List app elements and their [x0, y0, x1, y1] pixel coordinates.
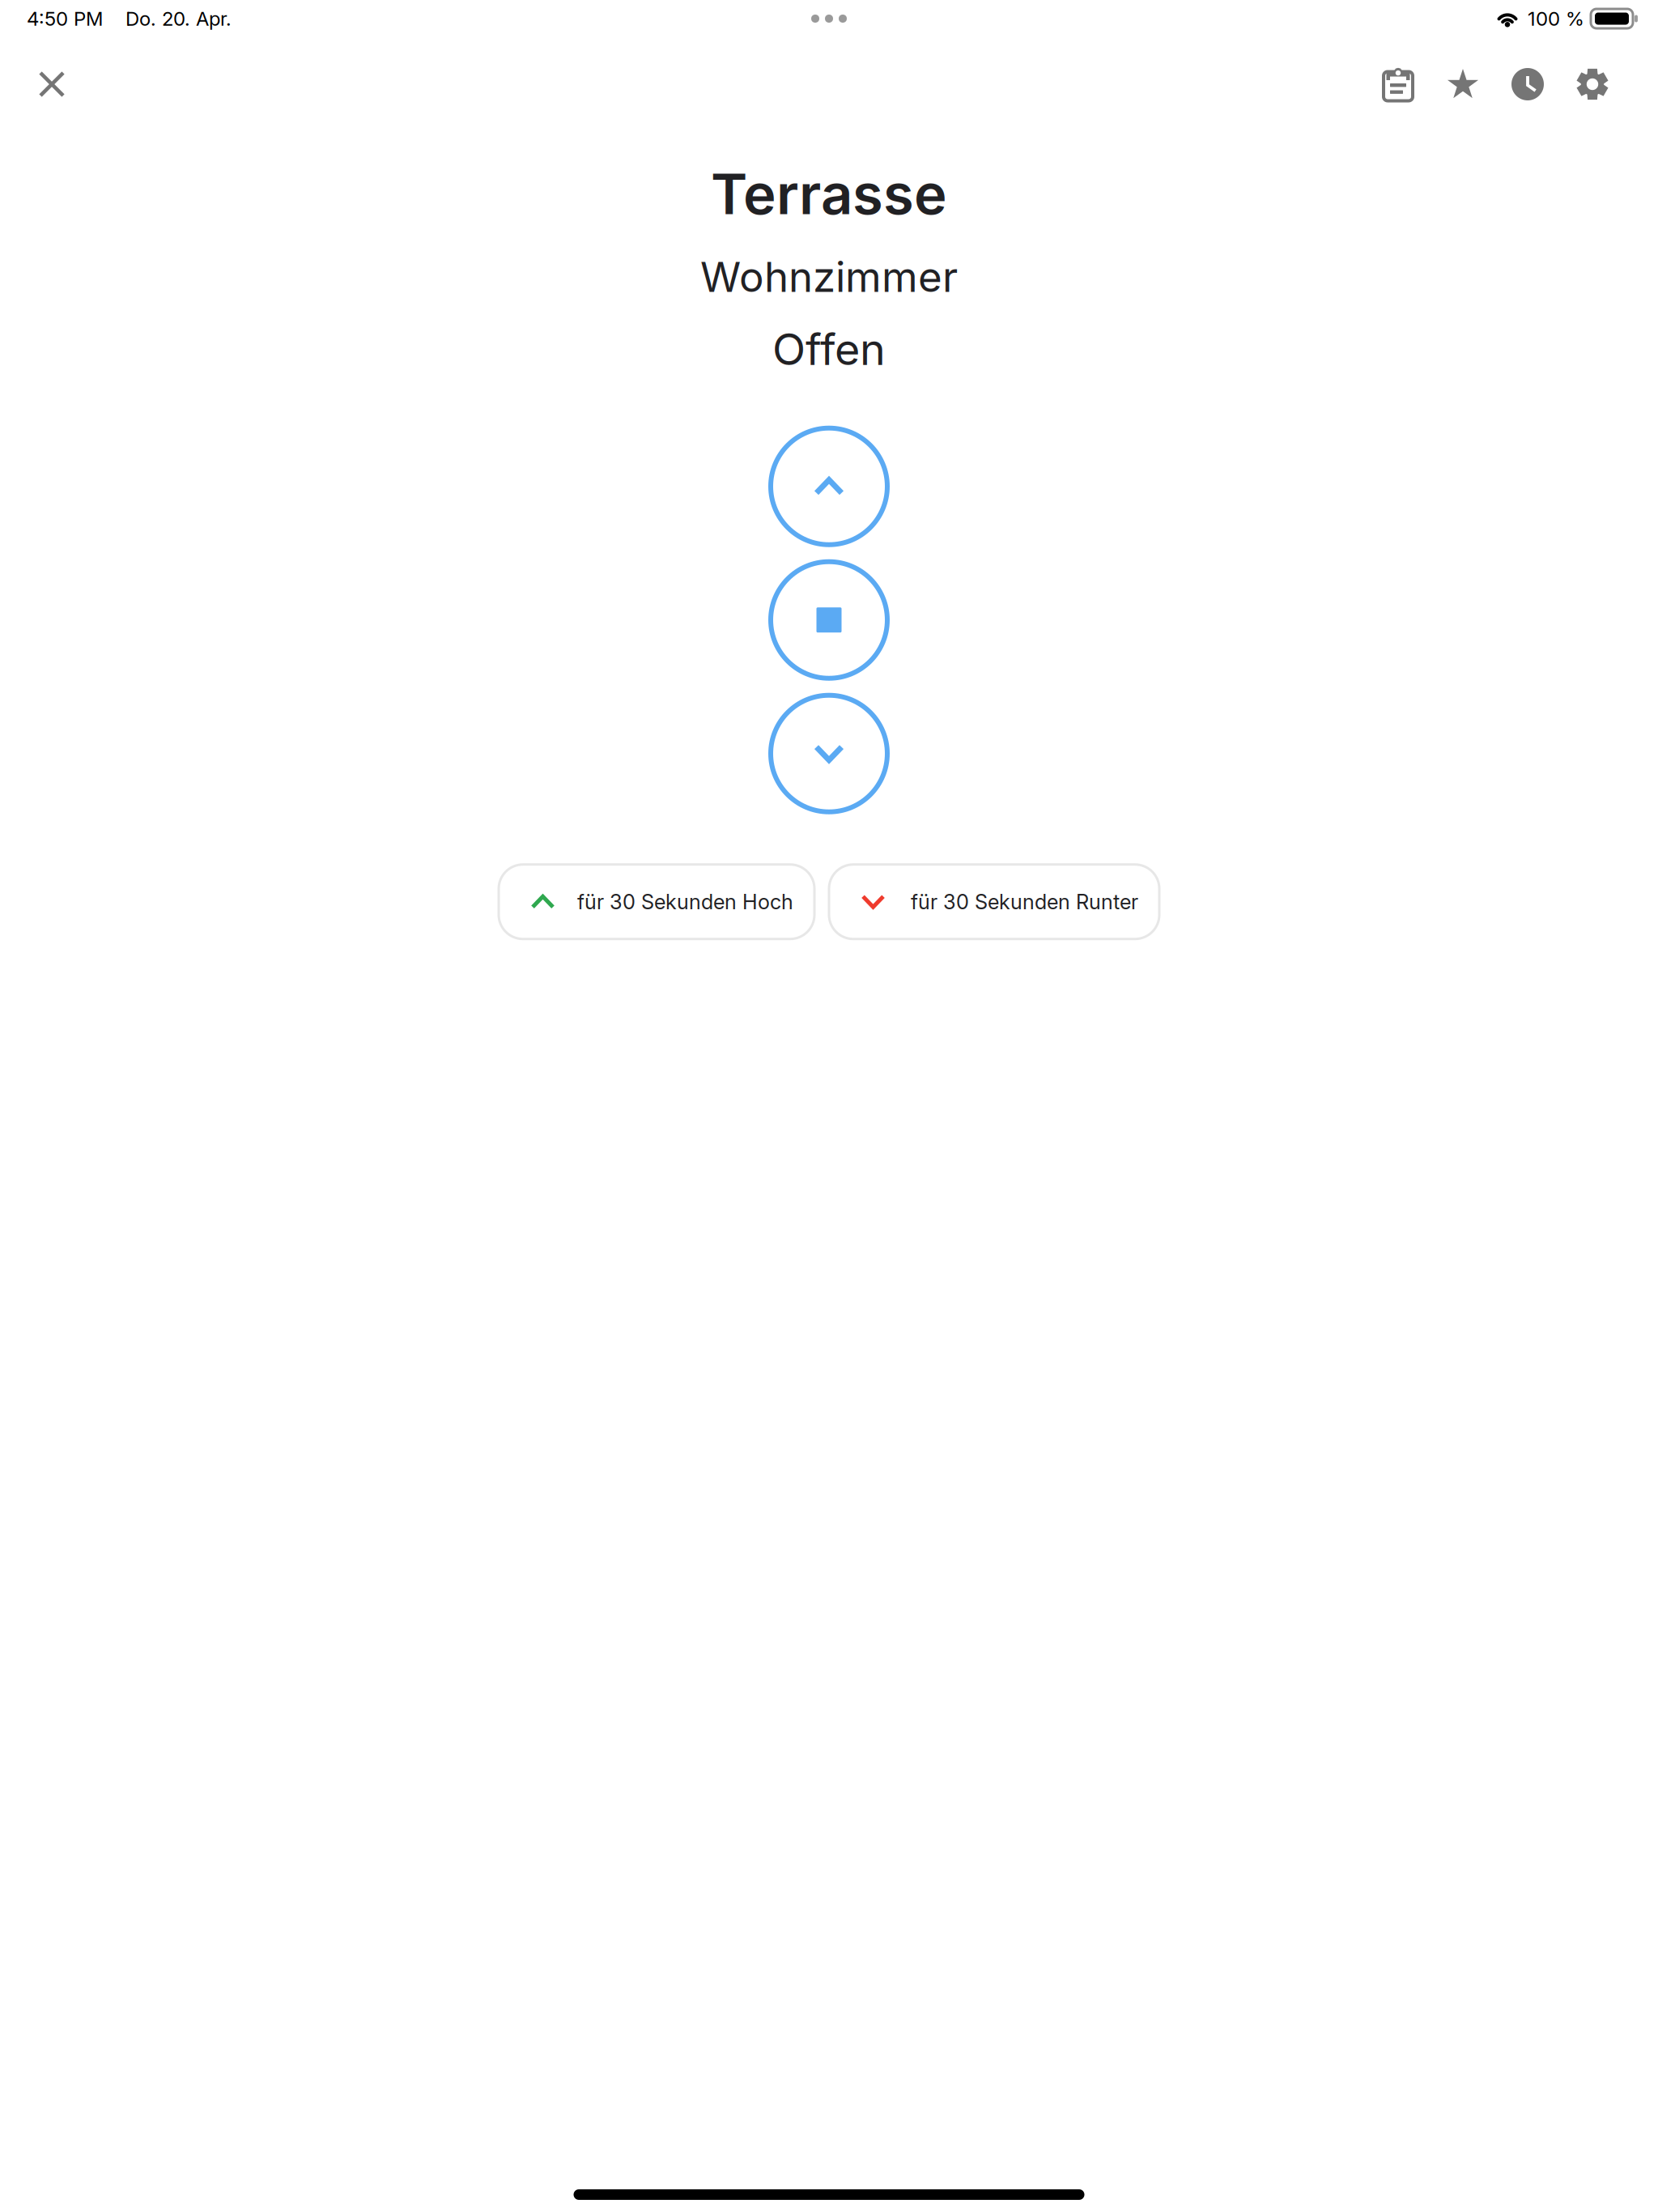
button[interactable]: Einstellungen — [1560, 58, 1625, 110]
staticText: Do. 20. Apr. — [125, 7, 232, 30]
button[interactable]: für 30 Sekunden Runter — [829, 864, 1159, 939]
button[interactable]: Schließen — [771, 695, 887, 812]
button[interactable]: Verlauf — [1495, 58, 1560, 110]
button[interactable]: Öffnen — [771, 428, 887, 545]
button[interactable]: für 30 Sekunden Hoch — [499, 864, 814, 939]
staticText: für 30 Sekunden Runter — [911, 889, 1138, 914]
button[interactable]: Stopp — [771, 562, 887, 678]
button[interactable]: Protokoll — [1366, 58, 1431, 110]
staticText: Wohnzimmer — [700, 252, 958, 302]
staticText: 4:50 PM — [27, 7, 103, 30]
staticText: 100 % — [1528, 7, 1584, 30]
staticText: Offen — [772, 323, 886, 375]
button[interactable]: Favorit — [1431, 58, 1495, 110]
button[interactable]: Schließen — [28, 58, 76, 110]
staticText: für 30 Sekunden Hoch — [577, 889, 793, 914]
staticText: Terrasse — [711, 160, 947, 228]
